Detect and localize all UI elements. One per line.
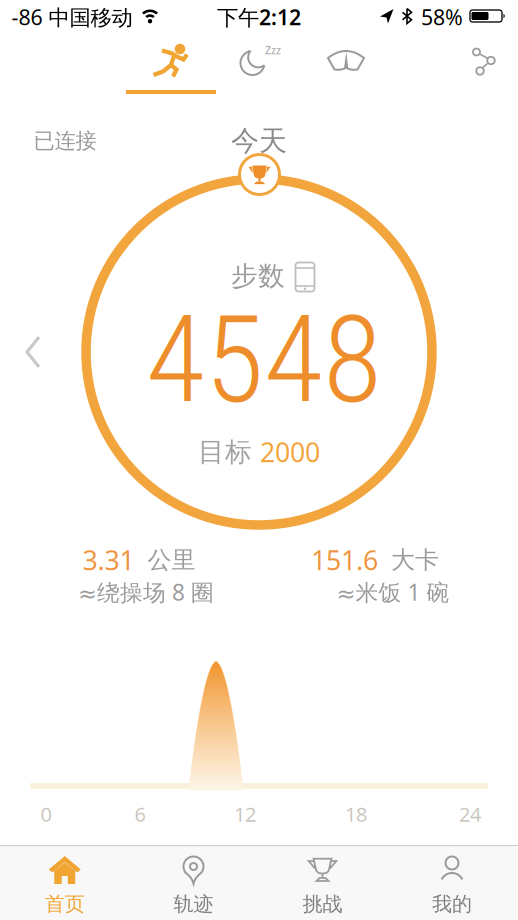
staticText: 58% [421, 3, 463, 31]
staticText: ≈绕操场 8 圈 [78, 577, 214, 607]
staticText: 6 [134, 801, 145, 827]
staticText: 2000 [260, 434, 320, 470]
staticText: 目标 [198, 436, 252, 468]
staticText: 3.31 [82, 542, 134, 578]
staticText: ≈米饭 1 碗 [336, 577, 449, 607]
button[interactable] [142, 37, 202, 87]
staticText: 今天 [231, 124, 287, 158]
staticText: 我的 [432, 892, 472, 916]
button[interactable] [461, 39, 505, 83]
staticText: 12 [234, 801, 256, 827]
button[interactable]: 轨迹 [129, 846, 258, 920]
staticText: 24 [459, 801, 481, 827]
staticText: 轨迹 [173, 892, 213, 916]
staticText: Zzz [265, 43, 281, 57]
staticText: 挑战 [302, 892, 342, 916]
staticText: 首页 [45, 892, 85, 916]
staticText: 步数 [231, 260, 285, 292]
button[interactable]: 首页 [0, 846, 129, 920]
button[interactable]: 我的 [387, 846, 516, 920]
staticText: 4548 [146, 289, 382, 431]
staticText: 公里 [147, 545, 195, 575]
staticText: 0 [40, 801, 51, 827]
button[interactable] [15, 324, 51, 380]
staticText: 大卡 [391, 545, 439, 575]
button[interactable]: 挑战 [258, 846, 387, 920]
staticText: 下午2:12 [217, 3, 301, 31]
staticText: 18 [345, 801, 367, 827]
staticText: 151.6 [311, 542, 378, 578]
button[interactable]: Zzz [232, 40, 288, 84]
button[interactable] [318, 39, 374, 83]
staticText: 已连接 [33, 128, 96, 154]
staticText: -86 中国移动 [11, 3, 132, 31]
